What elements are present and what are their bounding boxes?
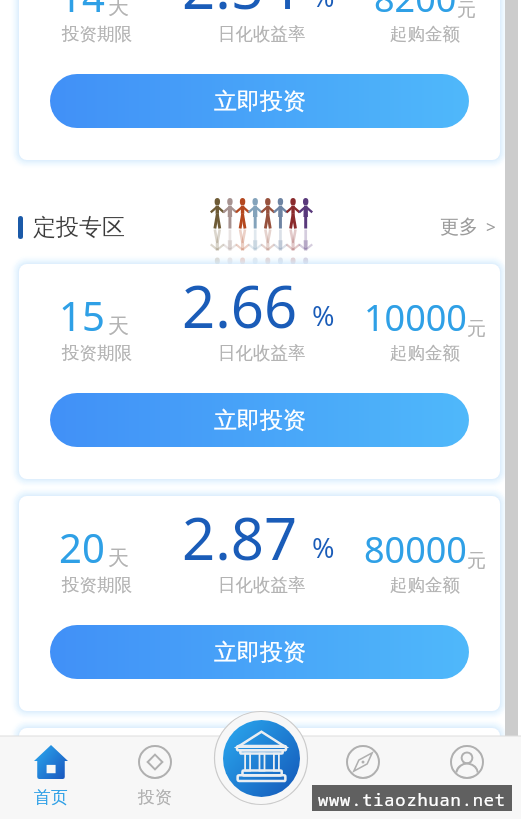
staticText: 元 <box>478 743 497 767</box>
staticText: 元 <box>457 0 476 22</box>
staticText: % <box>312 0 335 15</box>
staticText: 2.87 <box>182 498 298 577</box>
staticText: www.tiaozhuan.net <box>318 788 506 811</box>
staticText: 100000 <box>354 728 478 768</box>
button[interactable]: 定投专区 <box>18 213 125 242</box>
staticText: 2.54 <box>182 0 298 26</box>
button[interactable]: 首页 <box>0 736 103 819</box>
staticText: 日化收益率 <box>218 23 306 45</box>
staticText: 8200 <box>374 0 457 23</box>
staticText: 元 <box>467 317 486 341</box>
staticText: 投资期限 <box>62 768 132 790</box>
button[interactable]: 20 <box>19 496 500 711</box>
staticText: 更多 <box>440 215 478 239</box>
staticText: 起购金额 <box>390 768 460 790</box>
staticText: 投资期限 <box>62 23 132 45</box>
button[interactable]: 15 <box>19 264 500 479</box>
button[interactable]: 更多 <box>440 215 496 239</box>
button[interactable]: Profile <box>415 736 519 819</box>
staticText: % <box>312 529 335 566</box>
button[interactable]: 立即投资 <box>50 625 469 679</box>
button[interactable]: Discover <box>311 736 415 819</box>
button[interactable]: 投资 <box>103 736 207 819</box>
staticText: 30 <box>59 728 105 768</box>
button[interactable]: 30 <box>19 728 500 819</box>
button[interactable]: 立即投资 <box>50 74 469 128</box>
button[interactable]: Bank <box>223 720 300 797</box>
staticText: 元 <box>467 549 486 573</box>
staticText: 天 <box>108 0 129 20</box>
staticText: 3.10 <box>182 728 298 771</box>
staticText: 14 <box>59 0 105 23</box>
staticText: 投资 <box>138 787 172 808</box>
staticText: 2.66 <box>182 266 298 345</box>
staticText: % <box>312 297 335 334</box>
staticText: > <box>486 215 496 238</box>
staticText: 立即投资 <box>214 638 306 667</box>
staticText: 投资期限 <box>62 342 132 364</box>
staticText: 日化收益率 <box>218 574 306 596</box>
staticText: 10000 <box>364 293 467 342</box>
staticText: 日化收益率 <box>218 768 306 790</box>
staticText: 定投专区 <box>33 213 125 242</box>
staticText: 起购金额 <box>390 342 460 364</box>
staticText: 立即投资 <box>214 406 306 435</box>
staticText: 80000 <box>364 525 467 574</box>
button[interactable]: 立即投资 <box>50 393 469 447</box>
staticText: 投资期限 <box>62 574 132 596</box>
staticText: 首页 <box>34 787 68 808</box>
staticText: 15 <box>59 288 105 342</box>
staticText: 起购金额 <box>390 574 460 596</box>
staticText: 天 <box>108 545 129 571</box>
staticText: 立即投资 <box>214 87 306 116</box>
staticText: % <box>312 728 335 760</box>
staticText: 天 <box>108 313 129 339</box>
staticText: 日化收益率 <box>218 342 306 364</box>
staticText: 起购金额 <box>390 23 460 45</box>
staticText: 20 <box>59 520 105 574</box>
button[interactable]: 14 <box>19 0 500 160</box>
